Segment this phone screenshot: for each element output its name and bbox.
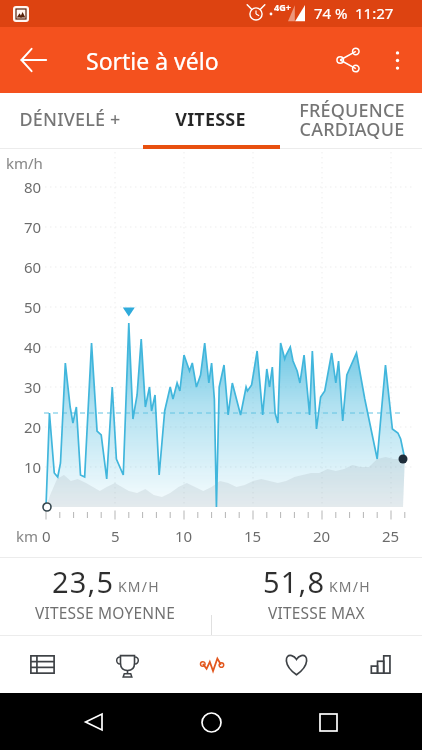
button[interactable]: Back bbox=[8, 35, 58, 85]
staticText: 0 bbox=[42, 526, 51, 546]
staticText: DÉNIVELÉ + bbox=[19, 107, 121, 132]
staticText: VITESSE MAX bbox=[268, 602, 365, 623]
staticText: 20 bbox=[24, 417, 42, 437]
staticText: 23,5 bbox=[52, 562, 115, 601]
button[interactable]: Recents bbox=[305, 699, 351, 745]
staticText: 51,8 bbox=[263, 562, 326, 601]
staticText: km bbox=[16, 526, 39, 546]
button[interactable]: Share bbox=[323, 35, 373, 85]
button[interactable]: 51,8 bbox=[211, 557, 422, 636]
button[interactable]: Back bbox=[71, 699, 117, 745]
staticText: KM/H bbox=[329, 577, 371, 596]
button[interactable]: DÉNIVELÉ + bbox=[0, 93, 140, 146]
staticText: VITESSE MOYENNE bbox=[35, 602, 176, 623]
staticText: 40 bbox=[24, 337, 42, 357]
staticText: 10 bbox=[175, 526, 193, 546]
staticText: 74 % bbox=[314, 3, 348, 23]
staticText: 30 bbox=[24, 377, 42, 397]
staticText: VITESSE bbox=[175, 107, 246, 132]
button[interactable]: Activity bbox=[170, 636, 254, 693]
staticText: 15 bbox=[244, 526, 262, 546]
staticText: 50 bbox=[24, 297, 42, 317]
staticText: 4G+ bbox=[274, 1, 291, 13]
staticText: Sortie à vélo bbox=[86, 45, 219, 76]
button[interactable]: Statistics bbox=[338, 636, 422, 693]
button[interactable]: FRÉQUENCE CARDIAQUE bbox=[281, 93, 422, 146]
staticText: FRÉQUENCE CARDIAQUE bbox=[299, 98, 405, 141]
staticText: 11:27 bbox=[355, 3, 394, 23]
button[interactable]: VITESSE bbox=[140, 93, 281, 146]
staticText: 25 bbox=[382, 526, 400, 546]
staticText: km/h bbox=[6, 153, 43, 173]
staticText: 10 bbox=[24, 457, 42, 477]
button[interactable]: Heart rate bbox=[254, 636, 338, 693]
staticText: KM/H bbox=[118, 577, 160, 596]
button[interactable]: Home bbox=[188, 699, 234, 745]
button[interactable]: Table bbox=[0, 636, 85, 693]
button[interactable]: 23,5 bbox=[0, 557, 211, 636]
staticText: 60 bbox=[24, 257, 42, 277]
button[interactable]: More options bbox=[373, 36, 421, 84]
staticText: 70 bbox=[24, 217, 42, 237]
staticText: 5 bbox=[111, 526, 120, 546]
staticText: 80 bbox=[24, 177, 42, 197]
staticText: 20 bbox=[313, 526, 331, 546]
button[interactable]: Records bbox=[85, 636, 170, 693]
